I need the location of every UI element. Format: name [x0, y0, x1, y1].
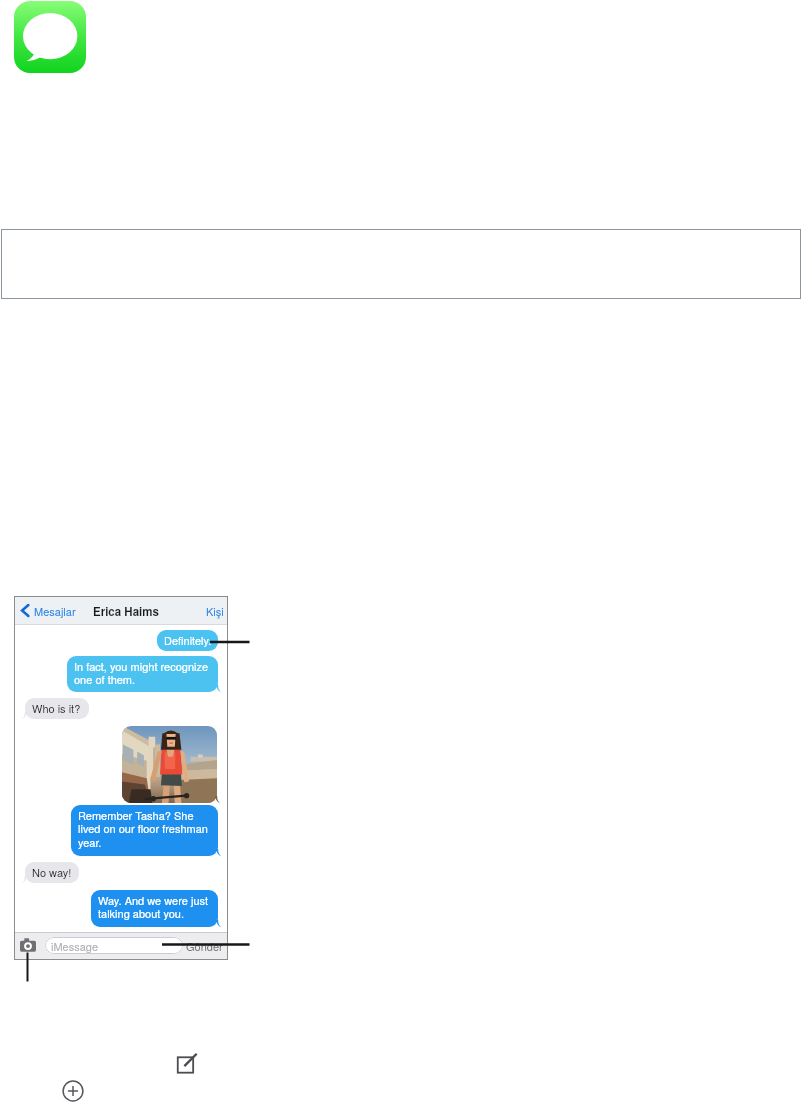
- staticText: Erica Haims: [93, 603, 159, 619]
- button[interactable]: Remember Tasha? She lived on our floor f…: [71, 805, 218, 856]
- staticText: No way!: [32, 864, 72, 880]
- staticText: iMessage: [51, 938, 99, 954]
- staticText: Definitely.: [164, 632, 212, 648]
- button[interactable]: Definitely.: [157, 630, 218, 651]
- staticText: Way. And we were just talking about you.: [98, 892, 208, 921]
- staticText: In fact, you might recognize one of them…: [74, 658, 209, 687]
- button[interactable]: Add: [62, 1080, 84, 1102]
- button[interactable]: Camera: [20, 938, 36, 952]
- button[interactable]: iMessage: [45, 937, 183, 954]
- button[interactable]: Photo of Tasha on a bicycle: [122, 726, 217, 803]
- button[interactable]: Kişi: [198, 597, 226, 624]
- staticText: Who is it?: [32, 700, 81, 716]
- staticText: Remember Tasha? She lived on our floor f…: [78, 807, 208, 850]
- staticText: Kişi: [206, 603, 224, 619]
- staticText: Mesajlar: [34, 603, 76, 619]
- button[interactable]: Way. And we were just talking about you.: [91, 890, 218, 927]
- button[interactable]: No way!: [25, 862, 79, 883]
- button[interactable]: Messages: [14, 1, 86, 73]
- button[interactable]: Who is it?: [25, 698, 89, 719]
- button[interactable]: In fact, you might recognize one of them…: [67, 656, 218, 692]
- button[interactable]: New message: [176, 1052, 198, 1074]
- button[interactable]: Gönder: [184, 937, 224, 954]
- button[interactable]: Mesajlar: [19, 597, 83, 624]
- staticText: Gönder: [186, 938, 223, 954]
